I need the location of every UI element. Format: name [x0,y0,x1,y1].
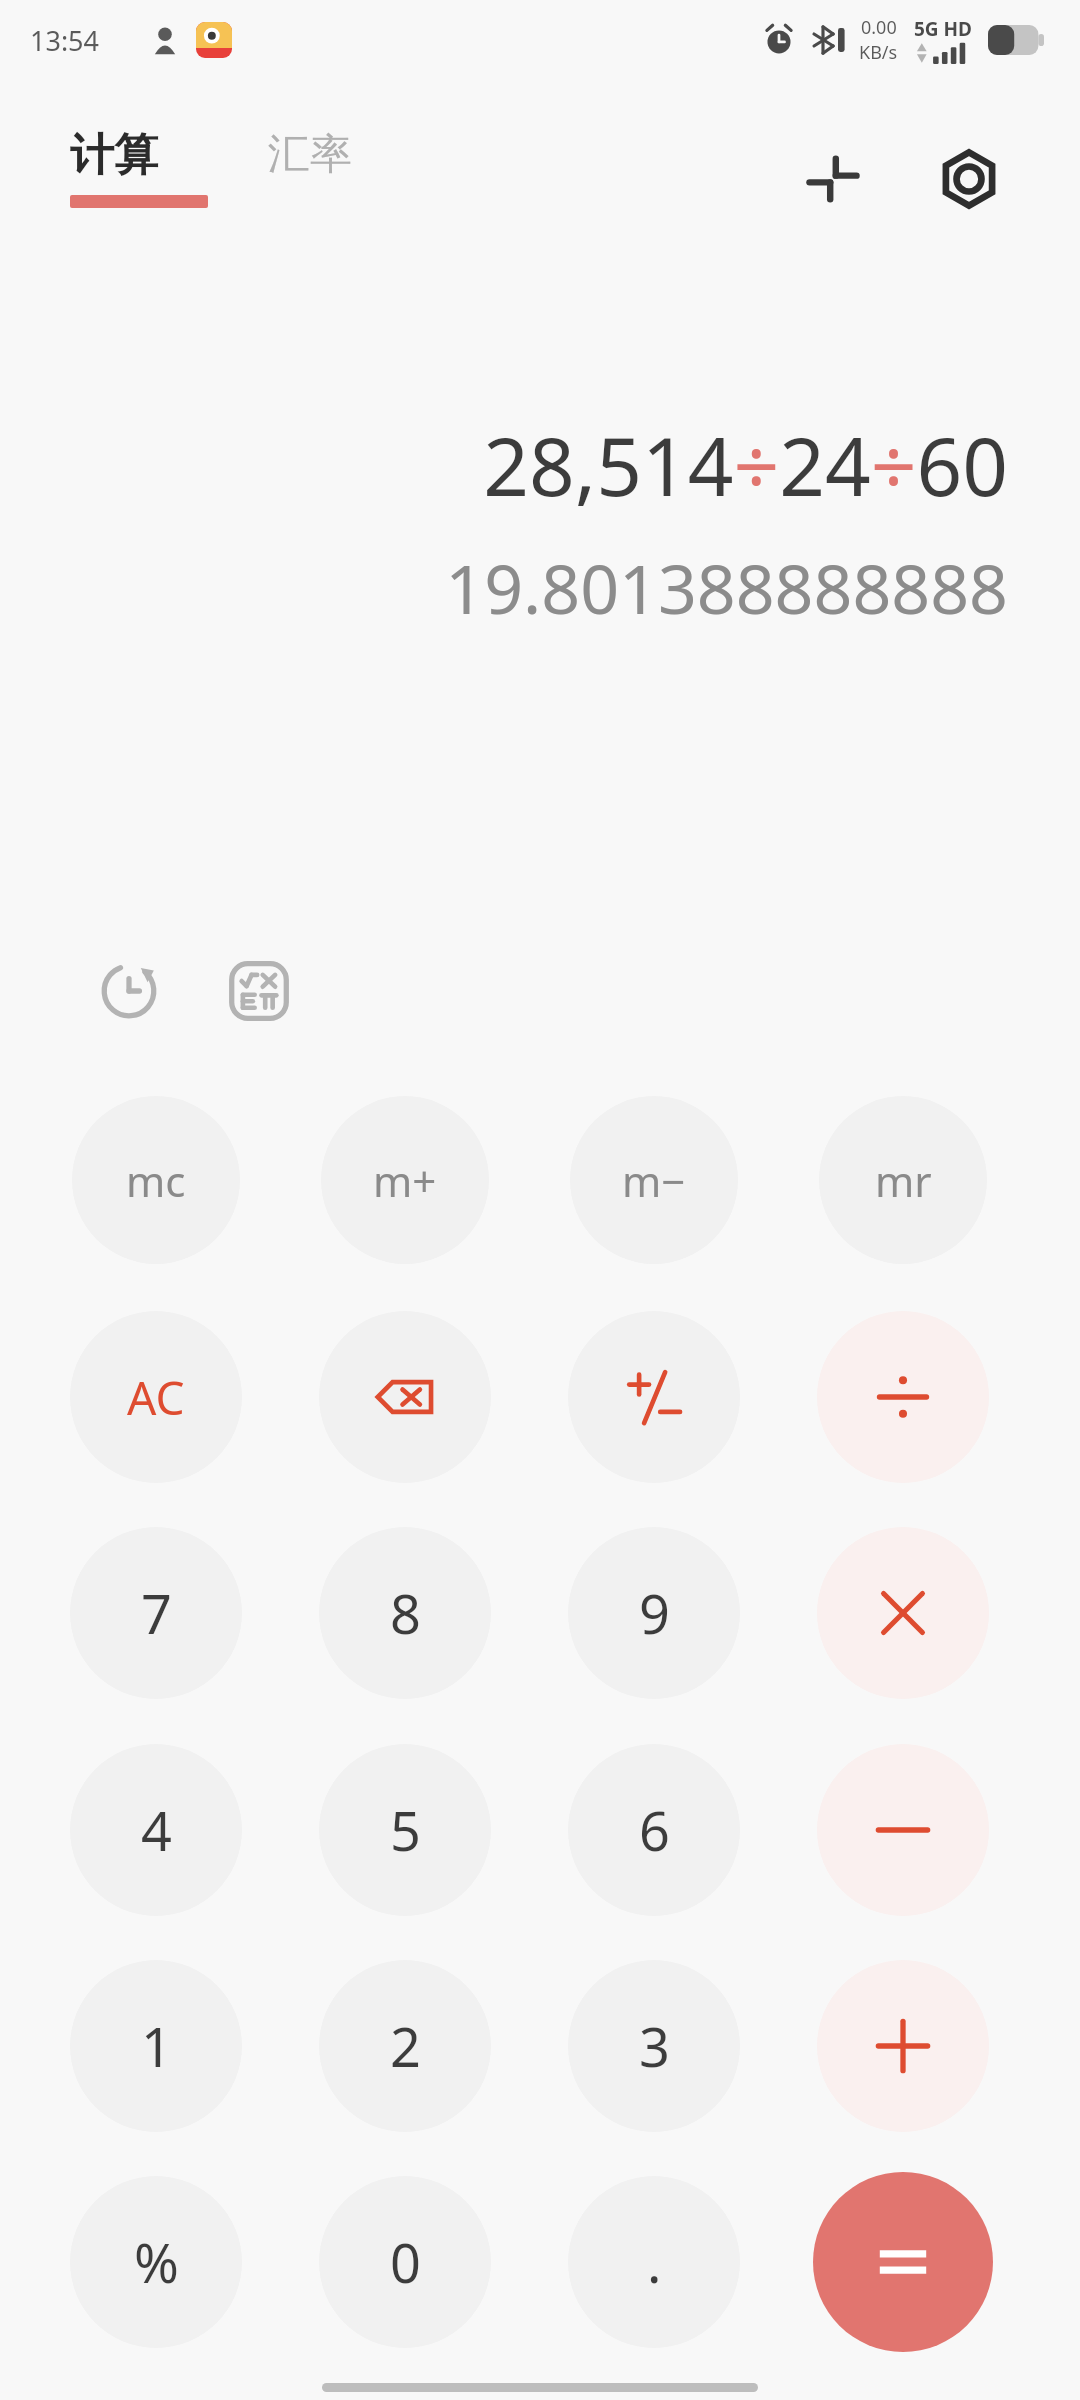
button[interactable]: Minus [817,1744,989,1916]
button[interactable]: mc [72,1096,240,1264]
staticText: 19.801388888888 [445,541,1008,634]
staticText: 4 [141,1793,172,1867]
button[interactable]: Plus [817,1960,989,2132]
button[interactable]: Multiply [817,1527,989,1699]
staticText: 2 [390,2009,421,2083]
button[interactable]: 3 [568,1960,740,2132]
staticText: 6 [639,1793,670,1867]
staticText: 1 [141,2009,172,2083]
button[interactable]: . [568,2176,740,2348]
staticText: mr [875,1152,932,1209]
button[interactable]: m+ [321,1096,489,1264]
staticText: 8 [390,1576,421,1650]
staticText: 0.00 [861,15,897,40]
button[interactable]: History [88,950,170,1032]
button[interactable]: mr [819,1096,987,1264]
staticText: 7 [141,1576,172,1650]
staticText: 5G HD [914,16,973,42]
button[interactable]: 4 [70,1744,242,1916]
button[interactable]: AC [70,1311,242,1483]
staticText: KB/s [859,40,898,65]
button[interactable]: 0 [319,2176,491,2348]
staticText: % [134,2225,179,2299]
button[interactable]: 6 [568,1744,740,1916]
button[interactable]: Divide [817,1311,989,1483]
button[interactable]: Equals [813,2172,993,2352]
staticText: mc [126,1152,186,1209]
staticText: m− [622,1152,686,1209]
staticText: 5 [390,1793,421,1867]
button[interactable]: Plus minus [568,1311,740,1483]
staticText: AC [127,1366,185,1429]
staticText: 3 [639,2009,670,2083]
staticText: 13:54 [30,22,100,59]
staticText: . [647,2225,662,2299]
button[interactable]: 计算 [70,128,208,208]
button[interactable]: 9 [568,1527,740,1699]
staticText: 汇率 [268,128,352,181]
button[interactable]: % [70,2176,242,2348]
staticText: 计算 [70,128,158,183]
button[interactable]: 5 [319,1744,491,1916]
staticText: m+ [373,1152,437,1209]
staticText: 9 [639,1576,670,1650]
button[interactable]: 汇率 [268,128,352,181]
button[interactable]: Backspace [319,1311,491,1483]
button[interactable]: Scientific mode [218,950,300,1032]
button[interactable]: Settings [926,136,1012,222]
staticText: 0 [390,2225,421,2299]
button[interactable]: Collapse [790,136,876,222]
button[interactable]: 8 [319,1527,491,1699]
staticText: 28,514÷24÷60 [483,410,1008,519]
button[interactable]: 1 [70,1960,242,2132]
button[interactable]: 2 [319,1960,491,2132]
button[interactable]: m− [570,1096,738,1264]
button[interactable]: 7 [70,1527,242,1699]
